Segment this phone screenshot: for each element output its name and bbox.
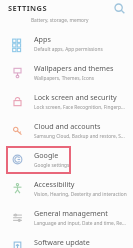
staticText: General management bbox=[34, 208, 108, 218]
staticText: Apps bbox=[34, 34, 51, 44]
staticText: Google bbox=[34, 150, 59, 160]
staticText: Battery, storage, memory bbox=[31, 17, 89, 24]
staticText: Lock screen, Face Recognition, Fingerp..… bbox=[34, 104, 125, 111]
staticText: Google settings bbox=[34, 162, 70, 169]
staticText: Software update bbox=[34, 237, 90, 247]
button[interactable]: Accessibility bbox=[0, 174, 133, 203]
button[interactable]: Battery, storage, memory bbox=[0, 16, 133, 29]
staticText: Samsung Cloud, Backup and restore, S... bbox=[34, 133, 125, 140]
staticText: Default apps, App permissions bbox=[34, 46, 103, 53]
button[interactable]: Apps bbox=[0, 29, 133, 58]
staticText: SETTINGS bbox=[8, 3, 47, 13]
staticText: Accessibility bbox=[34, 179, 75, 189]
button[interactable]: General management bbox=[0, 203, 133, 232]
button[interactable]: Cloud and accounts bbox=[0, 116, 133, 145]
staticText: Vision, Hearing, Dexterity and interacti… bbox=[34, 191, 127, 198]
staticText: Wallpapers and themes bbox=[34, 63, 114, 73]
button[interactable]: Lock screen and security bbox=[0, 87, 133, 116]
staticText: Language and input, Date and time, Re... bbox=[34, 220, 126, 227]
staticText: Lock screen and security bbox=[34, 92, 117, 102]
staticText: Wallpapers, Themes, Icons bbox=[34, 75, 95, 82]
button[interactable]: Software update bbox=[0, 232, 133, 248]
button[interactable]: Search bbox=[111, 0, 127, 16]
button[interactable]: Wallpapers and themes bbox=[0, 58, 133, 87]
button[interactable]: Google bbox=[0, 145, 133, 174]
staticText: Cloud and accounts bbox=[34, 121, 101, 131]
